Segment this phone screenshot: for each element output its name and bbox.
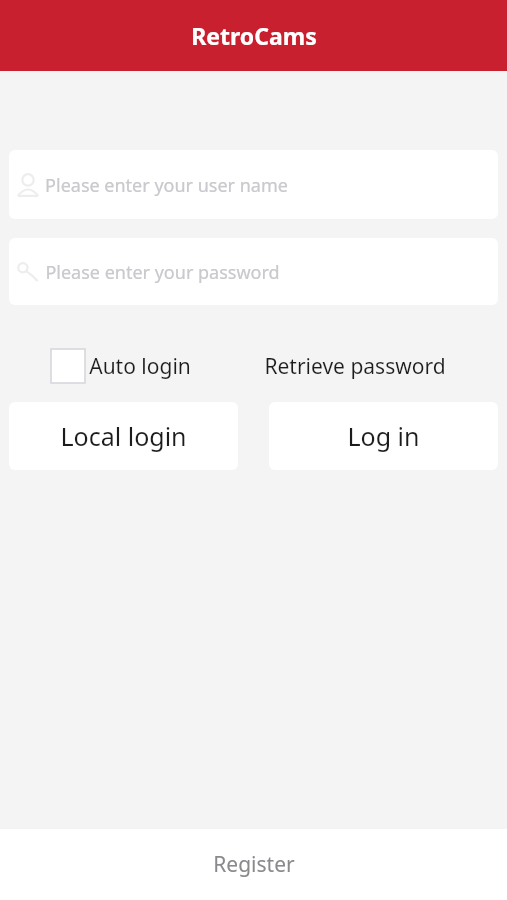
- staticText: Log in: [347, 419, 420, 453]
- button[interactable]: Log in: [269, 402, 498, 470]
- staticText: Local login: [60, 419, 187, 453]
- staticText: Please enter your user name: [45, 173, 288, 198]
- staticText: Auto login: [89, 352, 191, 381]
- button[interactable]: Local login: [9, 402, 238, 470]
- staticText: Register: [213, 850, 295, 879]
- staticText: Retrieve password: [264, 352, 446, 381]
- button[interactable]: Please enter your user name: [9, 150, 498, 219]
- button[interactable]: Please enter your password: [9, 238, 498, 305]
- staticText: Please enter your password: [45, 260, 280, 285]
- staticText: RetroCams: [191, 20, 317, 51]
- button[interactable]: Retrieve password: [264, 352, 446, 381]
- button[interactable]: Register: [0, 829, 507, 900]
- button[interactable]: Auto login: [51, 349, 191, 383]
